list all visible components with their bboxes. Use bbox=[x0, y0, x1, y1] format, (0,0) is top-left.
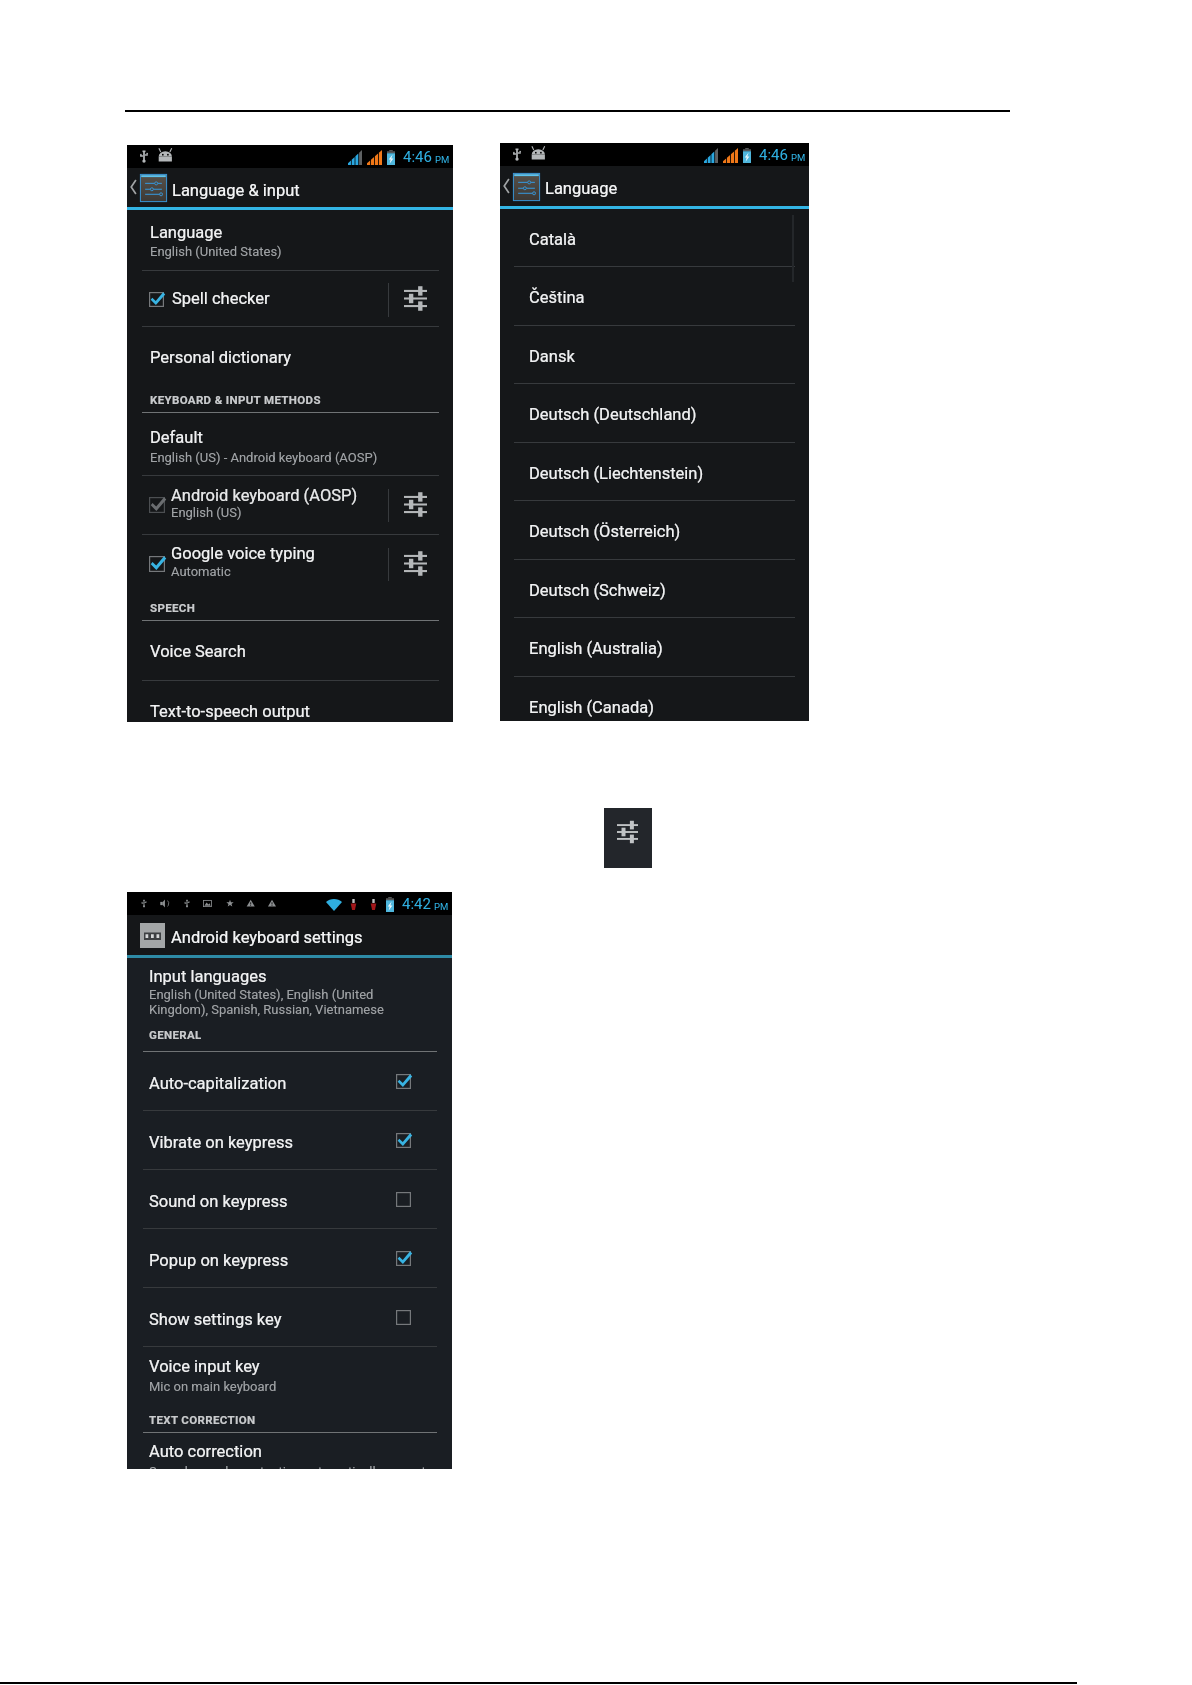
button[interactable] bbox=[127, 271, 388, 328]
staticText: Čeština bbox=[529, 288, 585, 307]
button[interactable] bbox=[127, 613, 453, 678]
button[interactable] bbox=[127, 212, 453, 270]
button[interactable]: Input method settings bbox=[604, 808, 652, 868]
staticText: 4:46 bbox=[759, 146, 788, 164]
staticText: Language & input bbox=[172, 181, 300, 200]
button[interactable]: Spell checker settings bbox=[389, 271, 453, 328]
staticText: Language bbox=[150, 223, 223, 242]
staticText: Voice Search bbox=[150, 642, 246, 661]
button[interactable] bbox=[127, 1289, 452, 1348]
button[interactable] bbox=[127, 680, 453, 722]
staticText: SPEECH bbox=[150, 601, 196, 614]
button[interactable] bbox=[127, 1171, 452, 1230]
staticText: 4:46 bbox=[403, 148, 432, 166]
button[interactable] bbox=[127, 327, 453, 383]
button[interactable] bbox=[127, 476, 388, 534]
button[interactable] bbox=[500, 443, 809, 502]
staticText: Input languages bbox=[149, 967, 267, 986]
button[interactable] bbox=[500, 385, 809, 444]
staticText: GENERAL bbox=[149, 1028, 202, 1041]
staticText: Language bbox=[545, 179, 618, 198]
staticText: PM bbox=[791, 152, 806, 163]
button[interactable]: Google voice typing settings bbox=[389, 535, 453, 593]
staticText: Dansk bbox=[529, 347, 575, 366]
button[interactable]: Android keyboard settings bbox=[389, 476, 453, 534]
staticText: English (US) - Android keyboard (AOSP) bbox=[150, 450, 378, 465]
button[interactable] bbox=[500, 326, 809, 385]
staticText: Spacebar and punctuation automatically c… bbox=[149, 1464, 426, 1469]
button[interactable] bbox=[127, 957, 452, 1029]
staticText: Show settings key bbox=[149, 1310, 282, 1329]
button[interactable] bbox=[127, 413, 453, 475]
staticText: English (Canada) bbox=[529, 698, 654, 717]
staticText: Català bbox=[529, 230, 577, 249]
button[interactable] bbox=[127, 1053, 452, 1112]
staticText: Deutsch (Österreich) bbox=[529, 522, 681, 541]
staticText: Text-to-speech output bbox=[150, 702, 310, 721]
button[interactable] bbox=[500, 619, 809, 678]
staticText: Default bbox=[150, 428, 203, 447]
staticText: Android keyboard settings bbox=[171, 928, 363, 947]
staticText: English (US) bbox=[171, 505, 242, 520]
staticText: English (United States) bbox=[150, 244, 282, 259]
staticText: Voice input key bbox=[149, 1357, 260, 1376]
button[interactable] bbox=[500, 560, 809, 619]
staticText: Personal dictionary bbox=[150, 348, 292, 367]
staticText: PM bbox=[434, 901, 449, 912]
staticText: Auto correction bbox=[149, 1442, 262, 1461]
staticText: Deutsch (Liechtenstein) bbox=[529, 464, 704, 483]
staticText: Popup on keypress bbox=[149, 1251, 289, 1270]
staticText: Auto-capitalization bbox=[149, 1074, 287, 1093]
button[interactable] bbox=[500, 502, 809, 561]
staticText: English (United States), English (United bbox=[149, 987, 374, 1002]
button[interactable] bbox=[500, 677, 809, 721]
button[interactable] bbox=[127, 1230, 452, 1289]
staticText: Google voice typing bbox=[171, 544, 315, 563]
staticText: English (Australia) bbox=[529, 639, 663, 658]
staticText: PM bbox=[435, 154, 450, 165]
staticText: Android keyboard (AOSP) bbox=[171, 486, 358, 505]
button[interactable] bbox=[500, 268, 809, 327]
staticText: TEXT CORRECTION bbox=[149, 1413, 256, 1426]
staticText: Vibrate on keypress bbox=[149, 1133, 294, 1152]
staticText: Automatic bbox=[171, 564, 231, 579]
staticText: KEYBOARD & INPUT METHODS bbox=[150, 393, 321, 406]
staticText: Mic on main keyboard bbox=[149, 1379, 277, 1394]
button[interactable] bbox=[127, 535, 388, 593]
button[interactable] bbox=[500, 209, 809, 268]
staticText: Deutsch (Schweiz) bbox=[529, 581, 666, 600]
staticText: Sound on keypress bbox=[149, 1192, 288, 1211]
button[interactable] bbox=[127, 1112, 452, 1171]
button[interactable] bbox=[127, 1433, 452, 1469]
button[interactable] bbox=[127, 1348, 452, 1422]
staticText: Kingdom), Spanish, Russian, Vietnamese bbox=[149, 1002, 384, 1017]
staticText: Deutsch (Deutschland) bbox=[529, 405, 697, 424]
staticText: Spell checker bbox=[172, 289, 270, 308]
staticText: 4:42 bbox=[402, 895, 431, 913]
